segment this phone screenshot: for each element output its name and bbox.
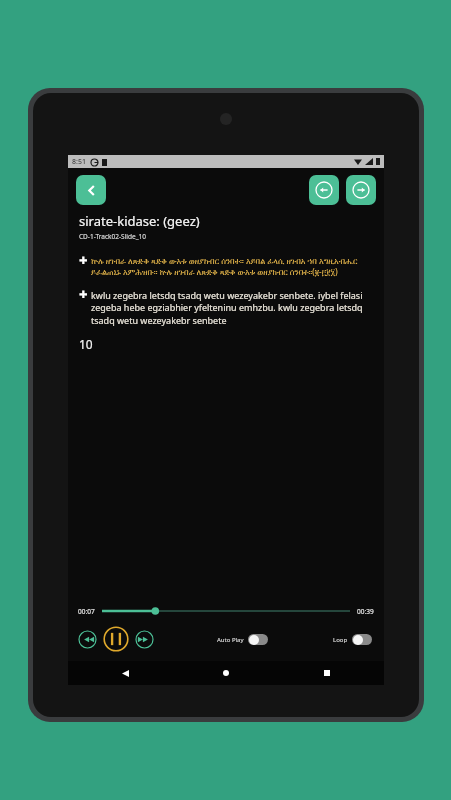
staticText: sirate-kidase: (geez) <box>79 212 200 230</box>
button[interactable]: Next <box>346 175 376 205</box>
button[interactable]: Back <box>76 175 106 205</box>
staticText: 00:07 <box>78 607 95 616</box>
staticText: CD-1-Track02-Slide_10 <box>79 232 147 241</box>
staticText: kwlu zegebra letsdq tsadq wetu wezeyakeb… <box>91 289 373 327</box>
button[interactable]: Forward <box>135 630 154 649</box>
staticText: ✚ <box>79 255 88 267</box>
staticText: ✚ <box>79 289 88 301</box>
button[interactable]: Previous <box>309 175 339 205</box>
button[interactable]: Pause <box>103 626 129 652</box>
button[interactable]: Home <box>217 664 235 682</box>
button[interactable]: Rewind <box>78 630 97 649</box>
staticText: Auto Play <box>217 636 244 644</box>
staticText: 00:39 <box>357 607 374 616</box>
button[interactable]: Auto Play <box>215 632 270 647</box>
staticText: 8:51 <box>72 157 86 167</box>
staticText: ኵሉ ዘገብራ ለጽድቅ ጻድቅ ውእቱ ወዘያከብር ሰንበተ። እይበል ፈ… <box>91 255 373 278</box>
button[interactable]: Seek bar <box>102 605 350 617</box>
staticText: Loop <box>333 636 348 644</box>
staticText: 10 <box>79 336 93 352</box>
button[interactable]: Recents <box>318 664 336 682</box>
button[interactable]: Loop <box>331 632 374 647</box>
button[interactable]: Back <box>116 664 134 682</box>
